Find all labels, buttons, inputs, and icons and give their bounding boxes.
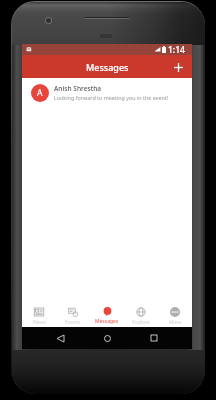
staticText: 1:14 bbox=[168, 44, 185, 55]
staticText: More bbox=[169, 319, 182, 326]
button[interactable]: More bbox=[158, 297, 192, 327]
staticText: Looking forward to meeting you in the ev… bbox=[54, 94, 169, 101]
staticText: Events bbox=[65, 319, 81, 326]
button[interactable]: Recents bbox=[146, 330, 162, 346]
button[interactable]: Explore bbox=[124, 297, 158, 327]
button[interactable]: Events bbox=[56, 297, 90, 327]
staticText: A bbox=[37, 87, 43, 99]
staticText: News bbox=[33, 319, 46, 326]
button[interactable]: News bbox=[22, 297, 56, 327]
button[interactable]: A bbox=[22, 78, 192, 108]
staticText: Explore bbox=[132, 319, 150, 326]
button[interactable]: Back bbox=[52, 330, 68, 346]
button[interactable]: Messages bbox=[90, 297, 124, 327]
button[interactable]: New message bbox=[170, 59, 186, 75]
staticText: Messages bbox=[95, 318, 119, 325]
button[interactable]: Home bbox=[99, 330, 115, 346]
staticText: Anish Shrestha bbox=[54, 84, 102, 93]
staticText: Messages bbox=[86, 61, 129, 73]
